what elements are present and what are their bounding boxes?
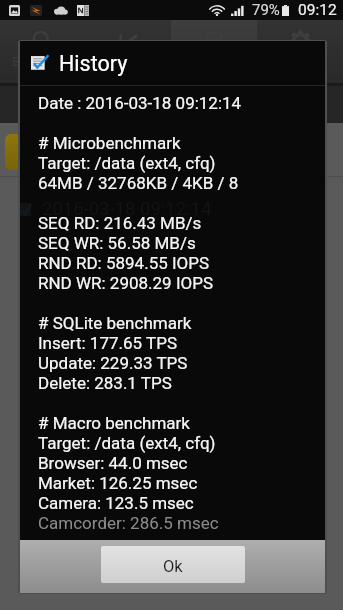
staticText: History <box>59 51 128 76</box>
button[interactable]: Setting <box>257 20 343 86</box>
staticText: Date : 2016-03-18 09:12:14 <box>38 93 242 113</box>
staticText: Benchmark <box>12 55 73 69</box>
staticText: RND WR: 2908.29 IOPS <box>38 273 214 293</box>
button[interactable]: Ok <box>101 546 245 583</box>
staticText: Market: 126.25 msec <box>38 473 198 493</box>
staticText: Target: /data (ext4, cfq) <box>38 153 216 173</box>
button[interactable]: History <box>171 20 257 86</box>
staticText: 79% <box>252 1 280 19</box>
button[interactable]: Benchmark <box>0 20 85 86</box>
button[interactable]: Result <box>85 20 171 86</box>
staticText: # Microbenchmark <box>38 133 181 153</box>
staticText: Result <box>111 55 145 69</box>
staticText: SEQ RD: 216.43 MB/s <box>38 213 202 233</box>
staticText: 64MB / 32768KB / 4KB / 8 <box>38 173 239 193</box>
staticText: AndroBench <box>55 89 149 109</box>
staticText: Target: /data (ext4, cfq) <box>38 433 216 453</box>
staticText: Delete: 283.1 TPS <box>38 373 172 393</box>
staticText: SEQ WR: 56.58 MB/s <box>38 233 196 253</box>
staticText: Browser: 44.0 msec <box>38 453 188 473</box>
staticText: RND RD: 5894.55 IOPS <box>38 253 210 273</box>
staticText: Camera: 123.5 msec <box>38 493 194 513</box>
staticText: 09:12 <box>298 1 337 19</box>
staticText: Camcorder: 286.5 msec <box>38 513 219 533</box>
staticText: Update: 229.33 TPS <box>38 353 188 373</box>
staticText: Ok <box>163 557 183 576</box>
staticText: Insert: 177.65 TPS <box>38 333 177 353</box>
staticText: 2016-03-18 09:12:14 <box>42 198 212 220</box>
staticText: # Macro benchmark <box>38 413 190 433</box>
staticText: # SQLite benchmark <box>38 313 192 333</box>
